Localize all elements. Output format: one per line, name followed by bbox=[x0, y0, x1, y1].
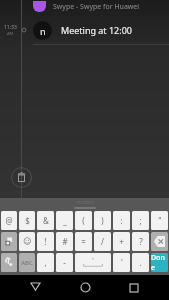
button[interactable]: Recent apps bbox=[119, 275, 149, 300]
button[interactable]: ; bbox=[132, 211, 149, 230]
button[interactable]: 11:33 bbox=[0, 16, 169, 44]
button[interactable]: $ bbox=[19, 211, 35, 230]
button[interactable]: _ bbox=[56, 211, 73, 230]
button[interactable]: + bbox=[113, 232, 130, 251]
button[interactable]: " bbox=[151, 211, 168, 230]
staticText: & bbox=[43, 215, 49, 226]
button[interactable]: / bbox=[94, 232, 111, 251]
staticText: : bbox=[120, 215, 123, 226]
button[interactable]: # bbox=[56, 232, 73, 251]
staticText: _ bbox=[63, 215, 67, 226]
button[interactable]: ☺ bbox=[19, 232, 35, 251]
staticText: ' bbox=[121, 257, 123, 268]
staticText: ; bbox=[139, 215, 142, 226]
staticText: ? bbox=[139, 236, 143, 247]
staticText: " bbox=[158, 215, 162, 226]
staticText: ☺ bbox=[23, 237, 32, 246]
button[interactable]: Swype - Swype for Huawei bbox=[0, 0, 169, 12]
staticText: - bbox=[63, 257, 66, 268]
staticText: ( bbox=[82, 215, 85, 226]
staticText: / bbox=[101, 236, 104, 247]
staticText: ! bbox=[44, 236, 47, 247]
button[interactable]: . bbox=[132, 253, 149, 272]
button[interactable]: ABC bbox=[19, 253, 35, 272]
button[interactable]: ( bbox=[75, 211, 92, 230]
button[interactable]: ) bbox=[94, 211, 111, 230]
staticText: Swype - Swype for Huawei bbox=[53, 2, 140, 12]
button[interactable]: Backspace bbox=[151, 232, 168, 251]
button[interactable]: = bbox=[75, 232, 92, 251]
button[interactable]: Home bbox=[70, 275, 100, 300]
button[interactable]: & bbox=[37, 211, 54, 230]
staticText: AM bbox=[7, 31, 14, 36]
staticText: + bbox=[119, 236, 124, 247]
staticText: ) bbox=[101, 215, 104, 226]
button[interactable]: Voice input bbox=[1, 253, 17, 272]
button[interactable]: Back bbox=[20, 275, 50, 300]
staticText: 11:33 bbox=[4, 24, 17, 31]
staticText: @ bbox=[5, 215, 13, 226]
staticText: Done bbox=[151, 253, 168, 272]
button[interactable]: : bbox=[113, 211, 130, 230]
button[interactable]: ' bbox=[113, 253, 130, 272]
button[interactable]: @ bbox=[1, 211, 17, 230]
staticText: , bbox=[44, 257, 47, 268]
button[interactable]: ? bbox=[132, 232, 149, 251]
button[interactable]: Done bbox=[151, 253, 168, 272]
staticText: n bbox=[40, 25, 46, 37]
staticText: . bbox=[139, 257, 142, 268]
button[interactable]: - bbox=[56, 253, 73, 272]
staticText: $ bbox=[25, 215, 30, 226]
button[interactable]: Delete bbox=[11, 167, 32, 188]
staticText: # bbox=[62, 236, 68, 247]
button[interactable]: Space bbox=[75, 253, 111, 272]
button[interactable]: , bbox=[37, 253, 54, 272]
staticText: ABC bbox=[21, 259, 33, 267]
staticText: Meeting at 12:00 bbox=[61, 24, 132, 36]
staticText: student bbox=[76, 199, 95, 206]
staticText: = bbox=[81, 236, 86, 247]
button[interactable]: Symbols bbox=[1, 232, 17, 251]
button[interactable]: ! bbox=[37, 232, 54, 251]
